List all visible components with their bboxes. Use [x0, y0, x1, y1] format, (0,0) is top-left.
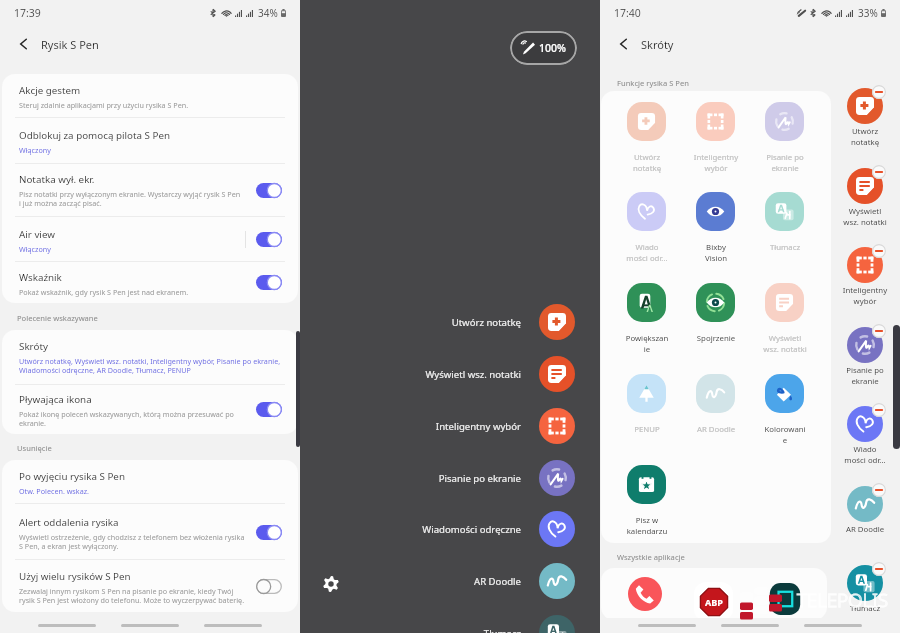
button[interactable]: Kolorowani e [752, 372, 818, 446]
staticText: 100% [539, 41, 566, 55]
button[interactable]: AdBlock Plus [694, 582, 733, 620]
button[interactable]: AR Doodle [832, 483, 898, 551]
button[interactable]: Navigation [121, 619, 179, 632]
staticText: Polecenie wskazywane [17, 313, 98, 323]
button[interactable]: Tłumacz [832, 562, 898, 630]
button[interactable]: Utwórz notatkę [614, 100, 680, 174]
staticText: Tłumacz [300, 627, 521, 633]
staticText: Wyświetl wsz. notatki [300, 368, 521, 381]
staticText: Powiększan ie [614, 333, 680, 355]
staticText: Air view [19, 228, 55, 241]
button[interactable]: Toggle [256, 183, 282, 198]
button[interactable]: Odblokuj za pomocą pilota S Pen [2, 118, 298, 164]
button[interactable]: Back [9, 30, 37, 58]
button[interactable]: Bixby Vision [683, 190, 749, 264]
staticText: Usunięcie [17, 443, 52, 453]
staticText: PENUP [614, 424, 680, 435]
staticText: Wskaźnik [19, 271, 62, 284]
staticText: ABP [705, 596, 723, 608]
button[interactable]: Toggle [256, 402, 282, 417]
button[interactable]: Pisanie po ekranie [300, 459, 600, 497]
staticText: Inteligentny wybór [832, 285, 898, 307]
button[interactable]: Navigation [638, 619, 696, 632]
button[interactable]: Inteligentny wybór [832, 244, 898, 312]
button[interactable]: Air view [2, 217, 298, 262]
staticText: Kolorowani e [752, 424, 818, 446]
button[interactable]: Phone [628, 577, 662, 611]
staticText: AR Doodle [300, 575, 521, 588]
staticText: Notatka wył. ekr. [19, 173, 95, 186]
staticText: Wiadomości odręczne [300, 523, 521, 536]
button[interactable]: Alert oddalenia rysika [2, 504, 298, 560]
button[interactable]: Wiado mości odr... [614, 190, 680, 264]
button[interactable]: Pisanie po ekranie [832, 324, 898, 392]
button[interactable]: Akcje gestem [2, 74, 298, 118]
button[interactable]: Navigation [804, 619, 862, 632]
button[interactable]: Wskaźnik [2, 262, 298, 303]
staticText: Pisz w kalendarzu [614, 515, 680, 537]
staticText: 33% [858, 6, 878, 20]
button[interactable]: Wiado mości odr... [832, 403, 898, 471]
button[interactable]: Inteligentny wybór [300, 407, 600, 445]
button[interactable]: AR Doodle [683, 372, 749, 446]
staticText: Tłumacz [752, 242, 818, 253]
staticText: Rysik S Pen [41, 37, 99, 52]
button[interactable]: Toggle [256, 232, 282, 247]
button[interactable]: PENUP [614, 372, 680, 446]
staticText: AR Doodle [683, 424, 749, 435]
button[interactable]: Notatka wył. ekr. [2, 164, 298, 217]
staticText: Utwórz notatkę [300, 316, 521, 329]
staticText: Wyświetl wsz. notatki [832, 206, 898, 228]
staticText: Włączony [19, 145, 271, 155]
staticText: Bixby Vision [683, 242, 749, 264]
button[interactable]: App [766, 580, 804, 618]
staticText: Wyświetl wsz. notatki [752, 333, 818, 355]
button[interactable]: Inteligentny wybór [683, 100, 749, 174]
staticText: Funkcje rysika S Pen [617, 78, 689, 88]
staticText: Pisz notatki przy wyłączonym ekranie. Wy… [19, 189, 242, 208]
staticText: Włączony [19, 244, 271, 254]
staticText: Pisanie po ekranie [752, 152, 818, 174]
staticText: Wyświetl ostrzeżenie, gdy chodzisz z tel… [19, 532, 249, 551]
staticText: 17:39 [14, 6, 41, 20]
staticText: Inteligentny wybór [300, 420, 521, 433]
button[interactable]: Powiększan ie [614, 281, 680, 355]
button[interactable]: Navigation [38, 619, 96, 632]
button[interactable]: Tłumacz [752, 190, 818, 264]
staticText: Tłumacz [832, 603, 898, 614]
button[interactable]: Po wyjęciu rysika S Pen [2, 460, 298, 504]
button[interactable]: Utwórz notatkę [300, 303, 600, 341]
button[interactable]: Toggle [256, 525, 282, 540]
button[interactable]: Toggle [256, 579, 282, 594]
button[interactable]: 100% [510, 31, 577, 65]
staticText: Wiado mości odr... [832, 444, 898, 466]
button[interactable]: Spojrzenie [683, 281, 749, 355]
button[interactable]: Toggle [256, 275, 282, 290]
button[interactable]: Tłumacz [300, 614, 600, 633]
button[interactable]: Pisanie po ekranie [752, 100, 818, 174]
staticText: Utwórz notatkę, Wyświetl wsz. notatki, I… [19, 356, 287, 375]
button[interactable]: Pływająca ikona [2, 385, 298, 434]
staticText: Steruj zdalnie aplikacjami przy użyciu r… [19, 100, 271, 110]
staticText: Pokaż ikonę poleceń wskazywanych, którą … [19, 409, 251, 428]
staticText: Użyj wielu rysików S Pen [19, 570, 131, 583]
button[interactable]: Pisz w kalendarzu [614, 463, 680, 537]
staticText: Otw. Polecen. wskaz. [19, 486, 271, 496]
button[interactable]: Skróty [2, 330, 298, 385]
button[interactable]: Settings [319, 572, 343, 596]
button[interactable]: Wyświetl wsz. notatki [752, 281, 818, 355]
staticText: 34% [258, 6, 278, 20]
button[interactable]: Back [609, 30, 637, 58]
button[interactable]: Navigation [204, 619, 262, 632]
button[interactable]: Wiadomości odręczne [300, 510, 600, 548]
staticText: Wiado mości odr... [614, 242, 680, 264]
button[interactable]: Utwórz notatkę [832, 85, 898, 153]
button[interactable]: Navigation [721, 619, 779, 632]
button[interactable]: Wyświetl wsz. notatki [300, 355, 600, 393]
staticText: Utwórz notatkę [614, 152, 680, 174]
button[interactable]: Użyj wielu rysików S Pen [2, 560, 298, 612]
staticText: Alert oddalenia rysika [19, 516, 119, 529]
button[interactable]: Wyświetl wsz. notatki [832, 165, 898, 233]
staticText: Pokaż wskaźnik, gdy rysik S Pen jest nad… [19, 287, 271, 297]
button[interactable]: AR Doodle [300, 562, 600, 600]
